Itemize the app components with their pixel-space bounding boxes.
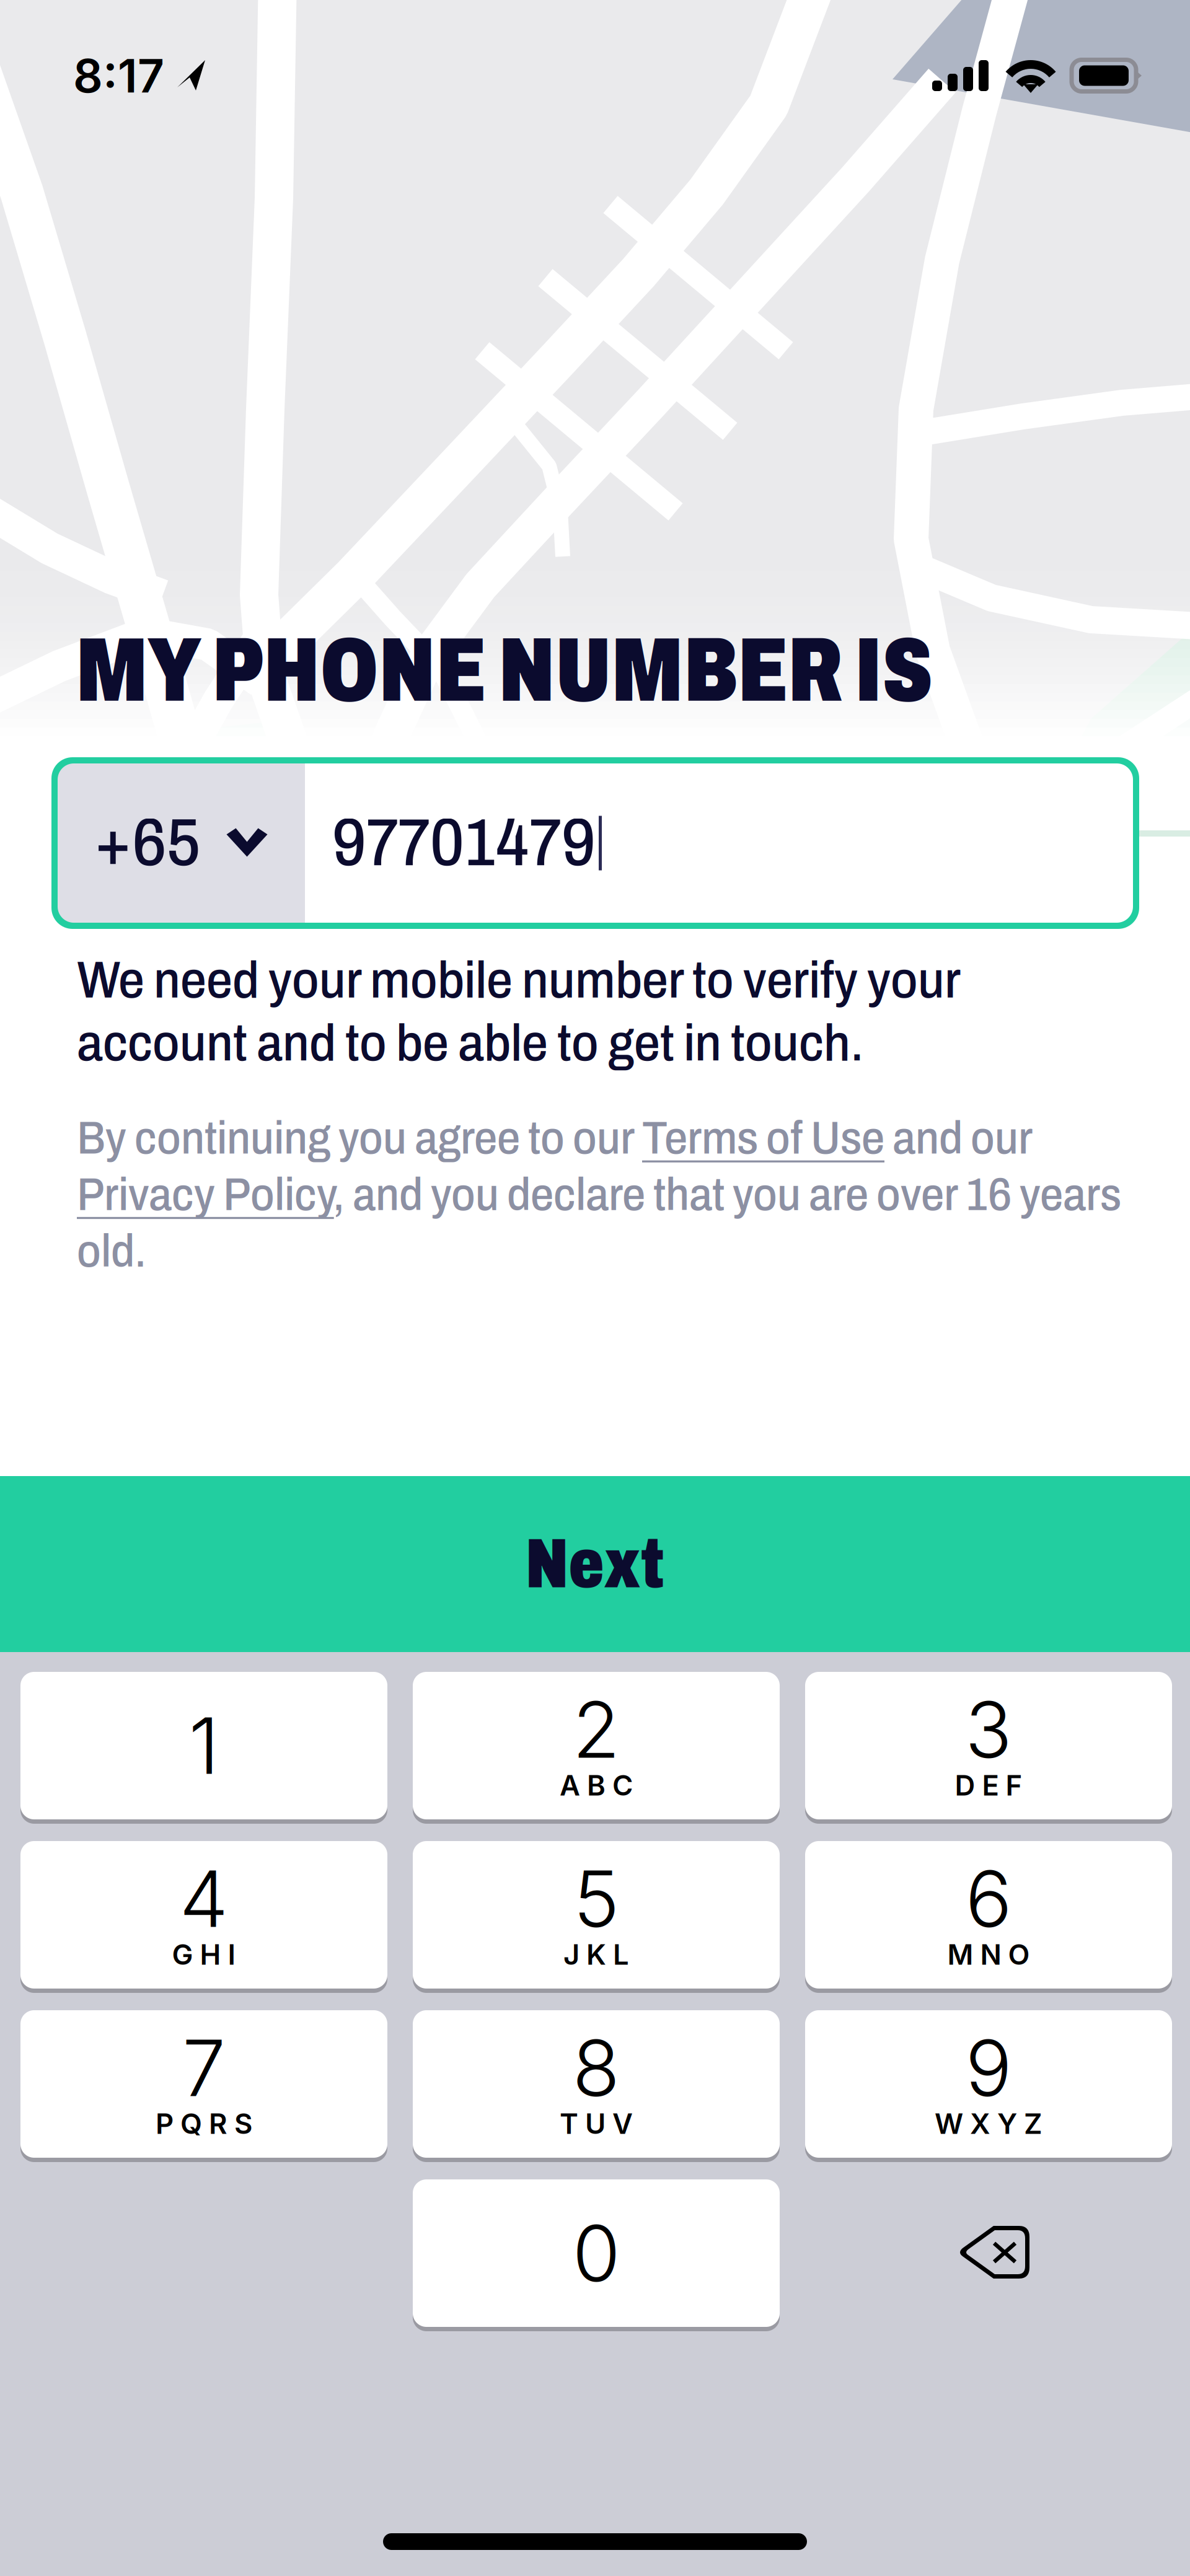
staticText: T U V (560, 2107, 633, 2141)
staticText: 8 (572, 2021, 620, 2115)
staticText: W X Y Z (935, 2107, 1042, 2141)
button[interactable]: 2 (413, 1672, 780, 1824)
button[interactable]: Next (0, 1476, 1190, 1652)
staticText: account and to be able to get in touch. (77, 1015, 864, 1071)
staticText: J K L (563, 1937, 629, 1972)
staticText: We need your mobile number to verify you… (77, 952, 961, 1008)
button[interactable]: +65 (51, 757, 1139, 929)
staticText: 7 (182, 2021, 226, 2115)
button[interactable]: 0 (413, 2179, 780, 2331)
staticText: Next (525, 1526, 665, 1602)
staticText: 4 (179, 1852, 228, 1946)
staticText: 97701479 (332, 807, 596, 879)
staticText: 5 (573, 1852, 619, 1946)
button[interactable]: 6 (805, 1841, 1172, 1993)
staticText: 1 (189, 1699, 219, 1793)
staticText: old. (77, 1226, 146, 1276)
staticText: G H I (172, 1937, 236, 1972)
staticText: 9 (965, 2021, 1012, 2115)
staticText: A B C (560, 1768, 633, 1802)
staticText: 8:17 (73, 48, 164, 104)
staticText: 0 (572, 2206, 620, 2300)
staticText: MY PHONE NUMBER IS (76, 621, 933, 720)
button[interactable]: Delete (805, 2179, 1172, 2331)
button[interactable]: 7 (20, 2010, 387, 2162)
staticText: D E F (955, 1768, 1022, 1802)
button[interactable]: 8 (413, 2010, 780, 2162)
button[interactable]: 4 (20, 1841, 387, 1993)
button[interactable]: 9 (805, 2010, 1172, 2162)
staticText: +65 (94, 807, 201, 879)
staticText: 2 (572, 1683, 620, 1776)
staticText: By continuing you agree to our Terms of … (77, 1113, 1033, 1163)
staticText: 6 (965, 1852, 1012, 1946)
button[interactable]: 5 (413, 1841, 780, 1993)
staticText: M N O (947, 1937, 1030, 1972)
staticText: P Q R S (156, 2107, 252, 2141)
button[interactable]: 3 (805, 1672, 1172, 1824)
staticText: 3 (965, 1683, 1012, 1776)
staticText: Privacy Policy, and you declare that you… (77, 1169, 1121, 1220)
button[interactable]: 1 (20, 1672, 387, 1824)
